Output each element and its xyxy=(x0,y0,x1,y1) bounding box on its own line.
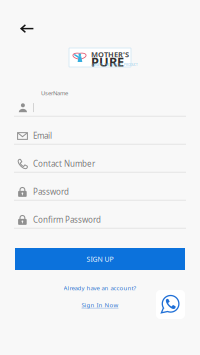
staticText: MOTHER'S xyxy=(91,49,129,59)
staticText: Password xyxy=(33,186,69,197)
button[interactable]: Back xyxy=(14,18,40,39)
staticText: Sign In Now xyxy=(81,301,118,309)
button[interactable]: SIGN UP xyxy=(15,248,185,270)
staticText: Contact Number xyxy=(33,158,95,169)
staticText: SIGN UP xyxy=(86,254,113,264)
button[interactable]: Already have an account? xyxy=(63,284,136,292)
button[interactable]: Sign In Now xyxy=(81,301,118,309)
staticText: Confirm Password xyxy=(33,214,101,225)
staticText: PURE xyxy=(91,53,124,70)
staticText: UserName xyxy=(41,89,68,97)
staticText: ALWAYS THE PUREST PRODUCT xyxy=(91,63,138,67)
staticText: Email xyxy=(33,130,52,141)
button[interactable]: Chat on WhatsApp xyxy=(156,290,185,319)
staticText: Already have an account? xyxy=(63,284,136,292)
